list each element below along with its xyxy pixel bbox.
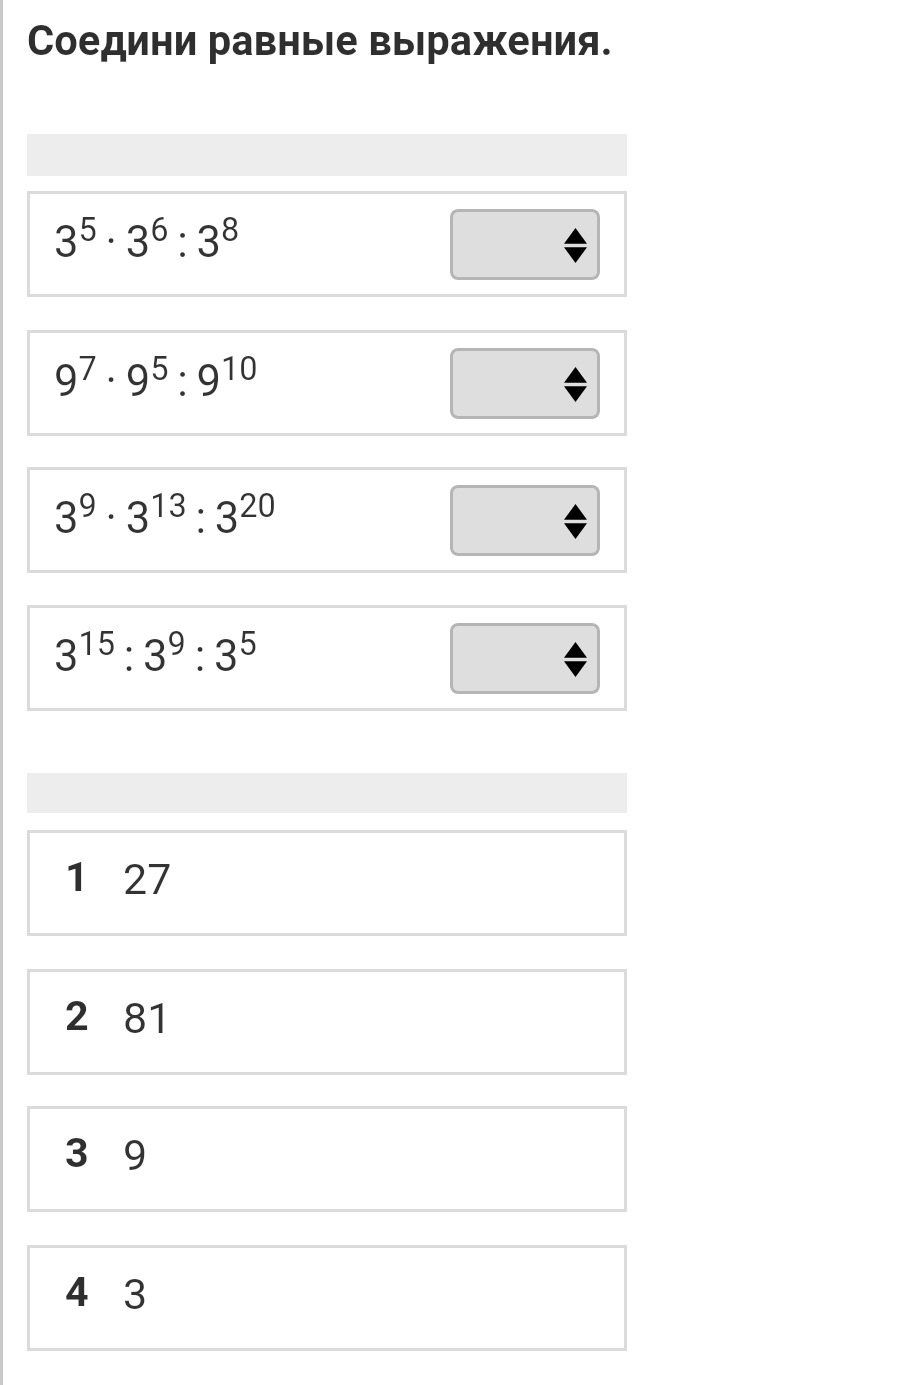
button[interactable]: Выбрать ответ (450, 209, 600, 280)
staticText: 1 (65, 853, 89, 901)
button[interactable]: 3 (27, 1106, 627, 1212)
staticText: 81 (123, 993, 172, 1043)
staticText: 39 · 313 : 320 (54, 487, 276, 543)
button[interactable]: 2 (27, 969, 627, 1075)
button[interactable]: Выбрать ответ (450, 348, 600, 419)
button[interactable]: 39 · 313 : 320 (27, 467, 627, 573)
staticText: 4 (65, 1268, 89, 1316)
staticText: 97 · 95 : 910 (54, 350, 258, 406)
staticText: 3 (123, 1269, 148, 1319)
staticText: 27 (123, 854, 172, 904)
staticText: 3 (65, 1129, 89, 1177)
button[interactable]: 35 · 36 : 38 (27, 191, 627, 297)
staticText: Соедини равные выражения. (27, 16, 613, 65)
button[interactable]: 1 (27, 830, 627, 936)
staticText: 2 (65, 992, 89, 1040)
button[interactable]: 97 · 95 : 910 (27, 330, 627, 436)
button[interactable]: Выбрать ответ (450, 485, 600, 556)
button[interactable]: 315 : 39 : 35 (27, 605, 627, 711)
button[interactable]: 4 (27, 1245, 627, 1351)
staticText: 35 · 36 : 38 (54, 211, 240, 267)
staticText: 9 (123, 1130, 148, 1180)
staticText: 315 : 39 : 35 (54, 625, 257, 681)
button[interactable]: Выбрать ответ (450, 623, 600, 694)
